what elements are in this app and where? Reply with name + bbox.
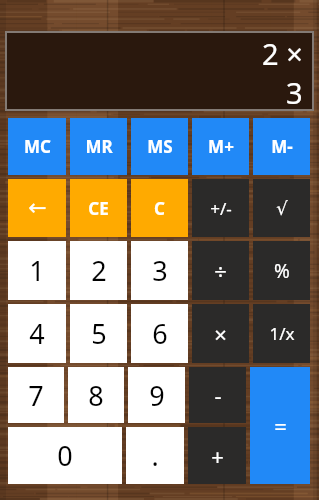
button[interactable]: 1/x — [253, 304, 310, 363]
button[interactable]: CE — [70, 179, 127, 237]
staticText: ← — [28, 195, 47, 221]
button[interactable]: MR — [70, 118, 127, 175]
button[interactable]: M+ — [192, 118, 249, 175]
staticText: 8 — [88, 377, 104, 414]
button[interactable]: 1 — [8, 241, 66, 300]
button[interactable]: 9 — [128, 367, 185, 423]
staticText: ÷ — [214, 256, 227, 286]
staticText: √ — [276, 198, 288, 219]
button[interactable]: 8 — [68, 367, 124, 423]
staticText: × — [214, 319, 227, 349]
staticText: 1 — [29, 252, 45, 289]
button[interactable]: × — [192, 304, 249, 363]
button[interactable]: +/- — [192, 179, 249, 237]
button[interactable]: = — [250, 367, 310, 484]
button[interactable]: - — [189, 367, 246, 423]
staticText: M- — [271, 135, 293, 158]
button[interactable]: MS — [131, 118, 188, 175]
staticText: C — [154, 197, 165, 220]
button[interactable]: M- — [253, 118, 310, 175]
button[interactable]: 3 — [131, 241, 188, 300]
staticText: 4 — [29, 315, 45, 352]
staticText: CE — [88, 197, 109, 220]
staticText: 3 — [152, 252, 168, 289]
button[interactable]: + — [188, 427, 246, 484]
button[interactable]: % — [253, 241, 310, 300]
staticText: 1/x — [269, 322, 295, 345]
staticText: +/- — [210, 197, 232, 220]
staticText: 9 — [149, 377, 165, 414]
staticText: - — [214, 380, 222, 410]
staticText: = — [274, 411, 287, 441]
button[interactable]: 7 — [8, 367, 64, 423]
button[interactable]: ← — [8, 179, 66, 237]
button[interactable]: . — [126, 427, 184, 484]
button[interactable]: 4 — [8, 304, 66, 363]
staticText: 3 — [286, 73, 303, 109]
staticText: 2 — [91, 252, 107, 289]
staticText: 6 — [152, 315, 168, 352]
button[interactable]: 6 — [131, 304, 188, 363]
button[interactable]: MC — [8, 118, 66, 175]
staticText: . — [151, 437, 159, 474]
staticText: MS — [147, 135, 173, 158]
button[interactable]: √ — [253, 179, 310, 237]
staticText: % — [274, 258, 290, 284]
staticText: 2 × — [262, 34, 303, 73]
staticText: MC — [24, 135, 51, 158]
button[interactable]: 2 — [70, 241, 127, 300]
staticText: M+ — [208, 135, 234, 158]
button[interactable]: 5 — [70, 304, 127, 363]
staticText: 0 — [57, 437, 73, 474]
button[interactable]: ÷ — [192, 241, 249, 300]
staticText: MR — [85, 135, 113, 158]
staticText: 5 — [91, 315, 107, 352]
button[interactable]: C — [131, 179, 188, 237]
staticText: + — [211, 441, 224, 471]
staticText: 7 — [28, 377, 44, 414]
button[interactable]: 0 — [8, 427, 122, 484]
